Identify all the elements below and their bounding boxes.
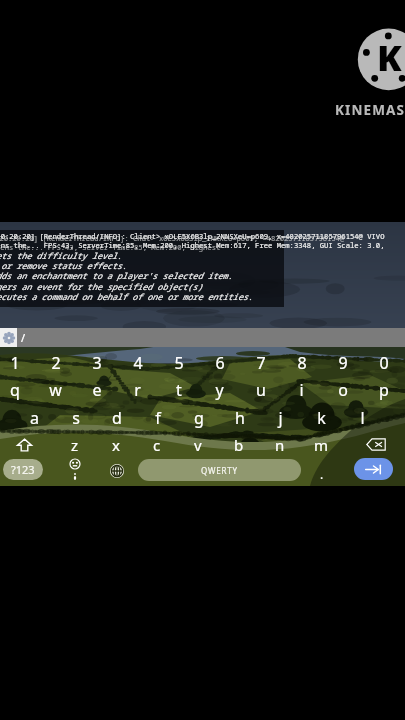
staticText: x	[112, 435, 120, 455]
button[interactable]: QWERTY	[138, 459, 301, 481]
button[interactable]: j	[260, 404, 301, 431]
staticText: 5	[174, 352, 184, 374]
staticText: /	[21, 330, 26, 345]
staticText: QWERTY	[201, 465, 238, 476]
staticText: s	[72, 407, 80, 429]
staticText: y	[215, 379, 224, 401]
staticText: k	[317, 407, 326, 429]
button[interactable]: k	[301, 404, 342, 431]
staticText: dds an enchantment to a player's selecte…	[0, 270, 233, 281]
staticText: 3	[92, 352, 102, 374]
staticText: [20:20:20] [RenderThread/INFO]: Chat> xO…	[0, 233, 345, 243]
staticText: K	[377, 33, 402, 82]
staticText: pens the... FPS:43, Server Time:85, Mem:…	[0, 242, 221, 252]
staticText: r	[134, 379, 141, 401]
staticText: m	[314, 435, 329, 455]
staticText: h	[235, 407, 245, 429]
button[interactable]: 0	[363, 349, 404, 376]
button[interactable]: 3	[76, 349, 117, 376]
button[interactable]: 2	[35, 349, 76, 376]
staticText: j	[278, 407, 283, 429]
staticText: n	[275, 435, 285, 455]
staticText: ecutes a command on behalf of one or mor…	[0, 291, 253, 302]
staticText: 4	[133, 352, 143, 374]
staticText: 2	[51, 352, 61, 374]
staticText: ?123	[11, 462, 35, 477]
button[interactable]: Emoji	[63, 459, 87, 480]
button[interactable]: u	[240, 376, 281, 403]
button[interactable]: f	[137, 404, 178, 431]
button[interactable]: y	[199, 376, 240, 403]
button[interactable]: 4	[117, 349, 158, 376]
button[interactable]: i	[281, 376, 322, 403]
staticText: a	[30, 407, 39, 429]
button[interactable]: Change keyboard language	[105, 459, 129, 480]
staticText: p	[379, 379, 389, 401]
button[interactable]: m	[301, 431, 341, 458]
staticText: 8	[297, 352, 307, 374]
staticText: 7	[256, 352, 266, 374]
button[interactable]: c	[137, 431, 177, 458]
staticText: o	[338, 379, 348, 401]
staticText: v	[194, 435, 202, 455]
staticText: 9	[338, 352, 348, 374]
button[interactable]: n	[260, 431, 300, 458]
staticText: KINEMAS	[335, 101, 405, 119]
button[interactable]: e	[76, 376, 117, 403]
staticText: [20:20:20] [RenderThread/INFO]: Client> …	[0, 231, 397, 241]
staticText: z	[71, 435, 79, 455]
staticText: 6	[215, 352, 225, 374]
button[interactable]: v	[178, 431, 218, 458]
button[interactable]: q	[0, 376, 35, 403]
button[interactable]: 5	[158, 349, 199, 376]
button[interactable]: Shift	[4, 431, 44, 458]
staticText: w	[49, 379, 62, 401]
staticText: c	[153, 435, 161, 455]
staticText: q	[10, 379, 20, 401]
button[interactable]: .	[309, 459, 334, 480]
button[interactable]: /	[17, 328, 405, 347]
button[interactable]: o	[322, 376, 363, 403]
staticText: or remove status effects.	[0, 260, 127, 271]
button[interactable]: a	[14, 404, 55, 431]
staticText: ets the difficulty level.	[0, 250, 122, 261]
button[interactable]: d	[96, 404, 137, 431]
button[interactable]: 1	[0, 349, 35, 376]
button[interactable]: t	[158, 376, 199, 403]
staticText: gers an event for the specified object(s…	[0, 281, 203, 292]
button[interactable]: b	[219, 431, 259, 458]
button[interactable]: s	[55, 404, 96, 431]
button[interactable]: 9	[322, 349, 363, 376]
button[interactable]: 7	[240, 349, 281, 376]
button[interactable]: g	[178, 404, 219, 431]
staticText: 1	[10, 352, 20, 374]
button[interactable]: l	[342, 404, 383, 431]
staticText: .	[320, 466, 324, 482]
staticText: e	[92, 379, 102, 401]
staticText: i	[299, 379, 304, 401]
button[interactable]: h	[219, 404, 260, 431]
staticText: l	[360, 407, 365, 429]
button[interactable]: p	[363, 376, 404, 403]
button[interactable]: w	[35, 376, 76, 403]
staticText: t	[176, 379, 182, 401]
button[interactable]: 8	[281, 349, 322, 376]
staticText: g	[194, 407, 204, 429]
button[interactable]: 6	[199, 349, 240, 376]
staticText: b	[234, 435, 244, 455]
staticText: pens the... FPS:43, ServerTime:85, Mem:2…	[0, 240, 397, 250]
button[interactable]: Settings	[0, 328, 17, 347]
button[interactable]: z	[55, 431, 95, 458]
staticText: f	[155, 407, 161, 429]
button[interactable]: x	[96, 431, 136, 458]
staticText: u	[256, 379, 266, 401]
button[interactable]: ?123	[3, 459, 43, 480]
button[interactable]: r	[117, 376, 158, 403]
staticText: 0	[379, 352, 389, 374]
button[interactable]: Backspace	[356, 431, 396, 458]
button[interactable]: Enter	[354, 458, 393, 480]
staticText: d	[112, 407, 122, 429]
